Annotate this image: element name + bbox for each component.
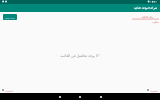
staticText: شركة النوافذ الذكية — [134, 6, 158, 10]
button[interactable]: رقم الطلب — [132, 13, 159, 24]
staticText: رقم الطلب — [141, 15, 153, 19]
button[interactable]: بحث جديد — [3, 14, 17, 20]
button[interactable]: تحديث — [147, 87, 158, 93]
button[interactable]: Recent apps — [96, 93, 106, 100]
staticText: تحديث — [5, 89, 13, 92]
staticText: لا يوجد تفاصيل في القائمة ! — [60, 53, 100, 58]
button[interactable]: Home — [75, 93, 85, 100]
button[interactable]: تحديث — [2, 87, 13, 93]
staticText: تحديث — [150, 89, 158, 92]
button[interactable]: Back — [54, 93, 64, 100]
staticText: بحث جديد — [5, 16, 15, 19]
staticText: مطلوب — [152, 21, 160, 24]
